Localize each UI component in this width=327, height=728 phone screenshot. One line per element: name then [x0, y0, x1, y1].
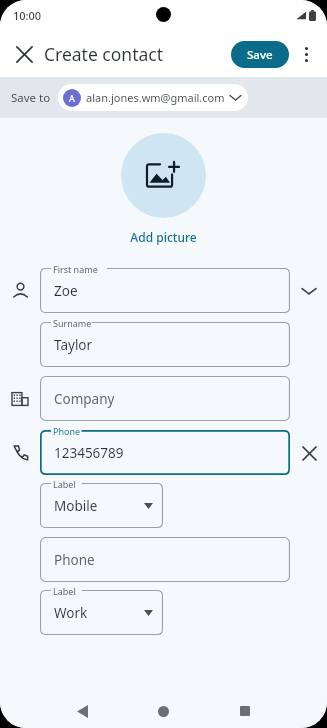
staticText: Create contact: [44, 42, 164, 66]
staticText: Surname: [53, 317, 92, 329]
button[interactable]: Home: [123, 694, 204, 728]
staticText: Mobile: [54, 497, 98, 515]
button[interactable]: Add picture: [130, 229, 197, 245]
button[interactable]: First name: [40, 268, 290, 313]
staticText: Phone: [54, 551, 95, 569]
staticText: Taylor: [54, 336, 93, 354]
staticText: Save to: [11, 90, 51, 106]
button[interactable]: Add picture: [121, 133, 206, 218]
button[interactable]: Close: [6, 36, 42, 72]
button[interactable]: Back: [42, 694, 123, 728]
button[interactable]: Save: [231, 41, 289, 68]
button[interactable]: Phone: [40, 430, 290, 475]
staticText: Company: [54, 390, 115, 408]
button[interactable]: Company: [40, 376, 290, 421]
button[interactable]: Recents: [204, 694, 285, 728]
staticText: A: [69, 92, 75, 104]
staticText: Save: [247, 47, 273, 63]
staticText: Work: [54, 604, 88, 622]
button[interactable]: More options: [289, 37, 323, 71]
staticText: First name: [53, 263, 98, 275]
staticText: Label: [53, 478, 76, 490]
button[interactable]: Label: [40, 590, 163, 635]
button[interactable]: Phone: [40, 537, 290, 582]
staticText: alan.jones.wm@gmail.com: [86, 90, 225, 105]
staticText: 123456789: [54, 444, 124, 462]
button[interactable]: A: [58, 84, 248, 111]
staticText: 10:00: [13, 8, 42, 23]
button[interactable]: Label: [40, 483, 163, 528]
button[interactable]: Clear phone: [293, 437, 325, 469]
button[interactable]: Expand name fields: [293, 275, 325, 307]
staticText: Zoe: [54, 282, 78, 300]
staticText: Label: [53, 585, 76, 597]
button[interactable]: Surname: [40, 322, 290, 367]
staticText: Phone: [53, 425, 81, 437]
